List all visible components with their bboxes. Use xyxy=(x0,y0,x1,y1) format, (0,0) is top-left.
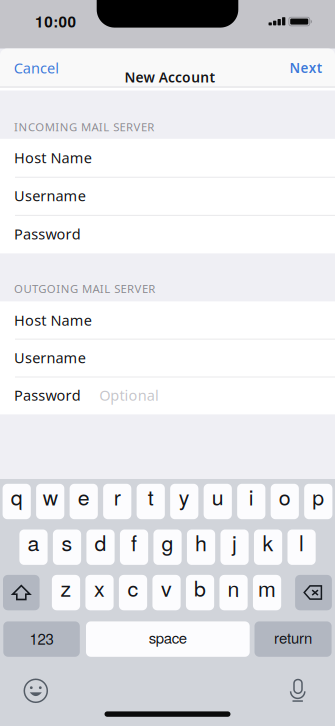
staticText: 123 xyxy=(30,628,54,649)
button[interactable]: Next xyxy=(283,53,327,79)
staticText: o xyxy=(279,481,291,512)
button[interactable]: Username xyxy=(0,177,335,215)
button[interactable]: 123 xyxy=(3,621,80,657)
staticText: Host Name xyxy=(14,310,92,330)
button[interactable]: l xyxy=(287,529,316,565)
staticText: w xyxy=(43,481,58,512)
staticText: Host Name xyxy=(14,148,92,167)
button[interactable]: Cancel xyxy=(7,53,63,79)
button[interactable]: x xyxy=(85,575,114,610)
button[interactable]: r xyxy=(103,484,131,519)
staticText: Password xyxy=(14,224,81,244)
button[interactable]: Username xyxy=(0,339,335,376)
button[interactable]: o xyxy=(271,484,299,519)
button[interactable]: q xyxy=(3,484,31,519)
button[interactable]: return xyxy=(254,621,332,657)
button[interactable]: Password xyxy=(0,377,335,414)
button[interactable]: h xyxy=(187,529,215,565)
staticText: d xyxy=(94,527,106,557)
staticText: x xyxy=(94,572,105,603)
button[interactable]: v xyxy=(152,575,181,610)
staticText: j xyxy=(232,527,237,557)
staticText: z xyxy=(60,572,71,603)
button[interactable]: i xyxy=(237,484,265,519)
button[interactable]: s xyxy=(53,529,81,565)
staticText: h xyxy=(195,527,207,557)
staticText: n xyxy=(227,572,239,603)
staticText: Next xyxy=(289,59,322,77)
staticText: s xyxy=(61,527,72,557)
button[interactable]: Password xyxy=(0,215,335,253)
button[interactable]: d xyxy=(86,529,115,565)
staticText: m xyxy=(258,572,276,603)
button[interactable]: e xyxy=(70,484,98,519)
button[interactable]: y xyxy=(170,484,198,519)
button[interactable]: g xyxy=(153,529,182,565)
staticText: Cancel xyxy=(14,58,59,78)
button[interactable]: n xyxy=(219,575,248,610)
staticText: Username xyxy=(14,348,86,367)
button[interactable]: Emoji keyboard xyxy=(24,679,47,702)
button[interactable]: Shift xyxy=(3,575,40,610)
button[interactable]: m xyxy=(253,575,281,610)
staticText: e xyxy=(78,481,90,512)
staticText: Optional xyxy=(99,385,159,405)
staticText: INCOMING MAIL SERVER xyxy=(14,119,154,134)
button[interactable]: c xyxy=(119,575,147,610)
staticText: space xyxy=(149,626,187,648)
staticText: a xyxy=(27,527,39,557)
staticText: k xyxy=(263,527,274,557)
button[interactable]: p xyxy=(304,484,332,519)
button[interactable]: z xyxy=(52,575,80,610)
staticText: f xyxy=(131,527,137,557)
button[interactable]: k xyxy=(254,529,282,565)
button[interactable]: Dictation xyxy=(288,678,308,702)
staticText: OUTGOING MAIL SERVER xyxy=(14,281,155,296)
button[interactable]: f xyxy=(120,529,148,565)
button[interactable]: w xyxy=(36,484,64,519)
staticText: i xyxy=(249,481,254,512)
staticText: b xyxy=(194,572,206,603)
staticText: Password xyxy=(14,385,81,405)
staticText: l xyxy=(299,527,304,557)
staticText: u xyxy=(212,481,224,512)
staticText: v xyxy=(161,572,172,603)
staticText: return xyxy=(274,626,312,648)
button[interactable]: b xyxy=(186,575,214,610)
staticText: 10:00 xyxy=(35,10,76,32)
staticText: y xyxy=(179,481,190,512)
button[interactable]: j xyxy=(220,529,249,565)
button[interactable]: u xyxy=(204,484,232,519)
button[interactable]: t xyxy=(137,484,165,519)
staticText: Username xyxy=(14,186,86,206)
staticText: r xyxy=(114,481,121,512)
button[interactable]: Host Name xyxy=(0,302,335,339)
staticText: New Account xyxy=(124,68,215,87)
button[interactable]: Delete xyxy=(295,575,332,610)
staticText: q xyxy=(11,481,23,512)
staticText: t xyxy=(148,481,154,512)
staticText: g xyxy=(161,527,173,557)
button[interactable]: space xyxy=(86,621,250,657)
staticText: p xyxy=(312,481,324,512)
staticText: c xyxy=(127,572,138,603)
button[interactable]: a xyxy=(19,529,48,565)
button[interactable]: Host Name xyxy=(0,139,335,177)
